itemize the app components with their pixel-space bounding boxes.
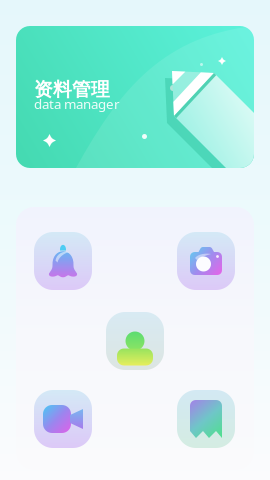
button[interactable]: Photos [177, 232, 235, 290]
staticText: data manager [34, 95, 120, 113]
button[interactable]: Bookmarks [177, 390, 235, 448]
staticText: 资料管理 [34, 78, 110, 101]
button[interactable]: Notifications [34, 232, 92, 290]
button[interactable]: Videos [34, 390, 92, 448]
button[interactable]: Profile [106, 312, 164, 370]
